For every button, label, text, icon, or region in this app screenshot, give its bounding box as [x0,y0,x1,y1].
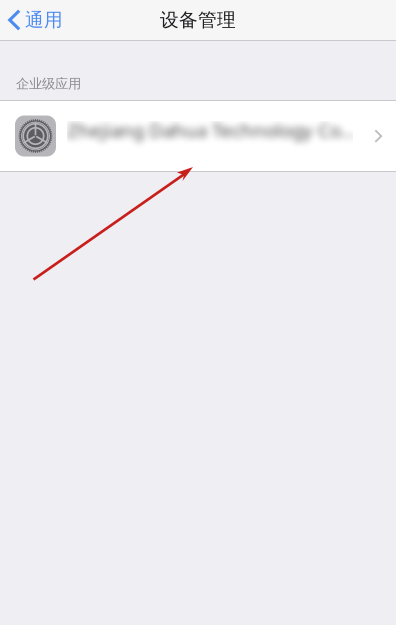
staticText: 企业级应用 [16,76,81,92]
button[interactable]: Zhejiang Dahua Technology Co... [0,101,396,171]
staticText: 通用 [25,8,63,31]
staticText: 设备管理 [160,8,236,31]
staticText: Zhejiang Dahua Technology Co... [67,28,356,52]
button[interactable]: 通用 [0,0,73,40]
